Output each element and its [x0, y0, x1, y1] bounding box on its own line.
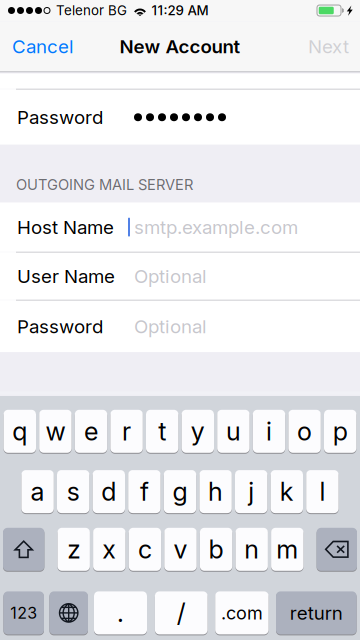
- staticText: User Name: [17, 265, 115, 288]
- staticText: q: [12, 416, 27, 447]
- staticText: OUTGOING MAIL SERVER: [16, 176, 193, 193]
- staticText: x: [102, 534, 116, 565]
- staticText: Telenor BG: [56, 2, 127, 18]
- button[interactable]: q: [4, 409, 36, 453]
- staticText: Password: [17, 315, 103, 338]
- button[interactable]: d: [93, 470, 125, 514]
- staticText: b: [209, 534, 224, 565]
- staticText: v: [173, 534, 187, 565]
- button[interactable]: n: [235, 527, 268, 571]
- button[interactable]: Delete: [317, 527, 357, 571]
- staticText: l: [319, 476, 325, 507]
- button[interactable]: Host Name: [0, 202, 360, 252]
- staticText: d: [101, 476, 116, 507]
- staticText: c: [138, 534, 152, 565]
- staticText: r: [122, 416, 131, 447]
- staticText: Next: [308, 35, 349, 58]
- staticText: u: [226, 416, 241, 447]
- staticText: .com: [221, 602, 263, 624]
- button[interactable]: t: [146, 409, 178, 453]
- staticText: return: [290, 602, 343, 624]
- button[interactable]: j: [235, 470, 267, 514]
- staticText: .: [117, 598, 124, 628]
- button[interactable]: /: [155, 591, 208, 635]
- staticText: 123: [10, 603, 37, 623]
- staticText: s: [67, 476, 80, 507]
- staticText: t: [158, 416, 166, 447]
- button[interactable]: r: [110, 409, 143, 453]
- button[interactable]: z: [57, 527, 90, 571]
- button[interactable]: w: [39, 409, 72, 453]
- staticText: 11:29 AM: [151, 2, 208, 18]
- button[interactable]: Next keyboard: [49, 591, 88, 635]
- button[interactable]: s: [57, 470, 89, 514]
- button[interactable]: x: [93, 527, 125, 571]
- staticText: New Account: [119, 35, 240, 58]
- button[interactable]: p: [324, 409, 356, 453]
- button[interactable]: i: [253, 409, 285, 453]
- staticText: h: [208, 476, 223, 507]
- staticText: Optional: [134, 315, 207, 338]
- button[interactable]: return: [276, 591, 357, 635]
- staticText: w: [45, 416, 65, 447]
- button[interactable]: b: [200, 527, 232, 571]
- staticText: g: [172, 476, 187, 507]
- button[interactable]: k: [271, 470, 303, 514]
- staticText: j: [248, 476, 254, 507]
- button[interactable]: e: [75, 409, 107, 453]
- button[interactable]: c: [129, 527, 161, 571]
- staticText: z: [67, 534, 80, 565]
- button[interactable]: Shift: [3, 527, 44, 571]
- staticText: Optional: [134, 265, 207, 288]
- staticText: e: [84, 416, 98, 447]
- button[interactable]: m: [271, 527, 303, 571]
- staticText: y: [191, 416, 205, 447]
- staticText: Host Name: [17, 216, 114, 238]
- staticText: m: [276, 534, 298, 565]
- staticText: f: [140, 476, 149, 507]
- button[interactable]: l: [306, 470, 339, 514]
- button[interactable]: g: [164, 470, 196, 514]
- staticText: n: [244, 534, 259, 565]
- button[interactable]: v: [164, 527, 197, 571]
- staticText: /: [177, 598, 186, 628]
- button[interactable]: Next: [294, 21, 360, 71]
- button[interactable]: Password: [0, 90, 360, 145]
- button[interactable]: h: [199, 470, 232, 514]
- button[interactable]: User Name: [0, 253, 360, 300]
- button[interactable]: u: [217, 409, 250, 453]
- button[interactable]: Password: [0, 301, 360, 352]
- button[interactable]: Cancel: [0, 21, 88, 71]
- button[interactable]: .com: [215, 591, 269, 635]
- staticText: i: [266, 416, 272, 447]
- staticText: p: [333, 416, 348, 447]
- button[interactable]: o: [288, 409, 321, 453]
- staticText: k: [280, 476, 294, 507]
- button[interactable]: f: [128, 470, 161, 514]
- staticText: Password: [17, 106, 103, 129]
- staticText: Cancel: [12, 35, 74, 58]
- button[interactable]: a: [21, 470, 54, 514]
- staticText: smtp.example.com: [134, 216, 298, 238]
- staticText: o: [297, 416, 312, 447]
- button[interactable]: 123: [3, 591, 44, 635]
- staticText: a: [31, 476, 45, 507]
- button[interactable]: .: [94, 591, 147, 635]
- button[interactable]: y: [182, 409, 214, 453]
